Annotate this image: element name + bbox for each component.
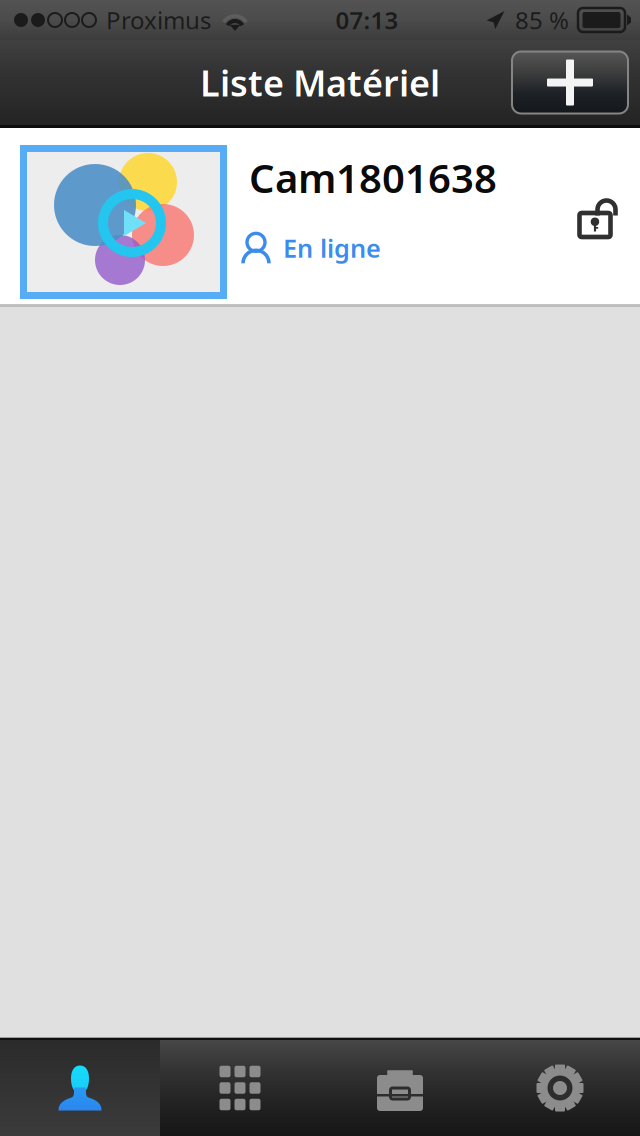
button[interactable]: Contacts <box>0 1040 160 1136</box>
button[interactable]: Add <box>512 51 628 113</box>
button[interactable]: Settings <box>480 1040 640 1136</box>
staticText: 85 % <box>515 4 569 36</box>
staticText: 07:13 <box>335 4 398 36</box>
button[interactable]: Cam1801638 <box>0 128 640 304</box>
staticText: Cam1801638 <box>249 151 497 204</box>
button[interactable]: Work <box>320 1040 480 1136</box>
staticText: Proximus <box>106 4 211 36</box>
button[interactable]: Apps <box>160 1040 320 1136</box>
staticText: Liste Matériel <box>200 59 440 106</box>
staticText: En ligne <box>283 231 381 265</box>
